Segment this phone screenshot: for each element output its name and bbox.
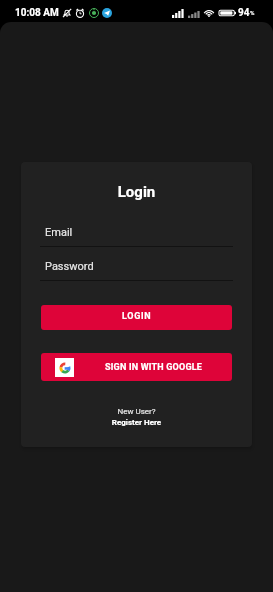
staticText: 94	[238, 7, 250, 19]
staticText: Login	[40, 183, 233, 201]
button[interactable]: SIGN IN WITH GOOGLE	[41, 353, 232, 381]
staticText: Email	[45, 226, 73, 239]
staticText: New User?	[40, 407, 233, 416]
staticText: SIGN IN WITH GOOGLE	[105, 362, 203, 373]
button[interactable]: Password field	[40, 260, 233, 281]
button[interactable]: Email field	[40, 226, 233, 247]
staticText: 10:08 AM	[15, 7, 59, 19]
staticText: LOGIN	[122, 311, 152, 322]
button[interactable]: Register Here	[40, 418, 233, 427]
staticText: Password	[45, 260, 94, 273]
button[interactable]: LOGIN	[41, 305, 232, 330]
staticText: %	[250, 9, 255, 16]
